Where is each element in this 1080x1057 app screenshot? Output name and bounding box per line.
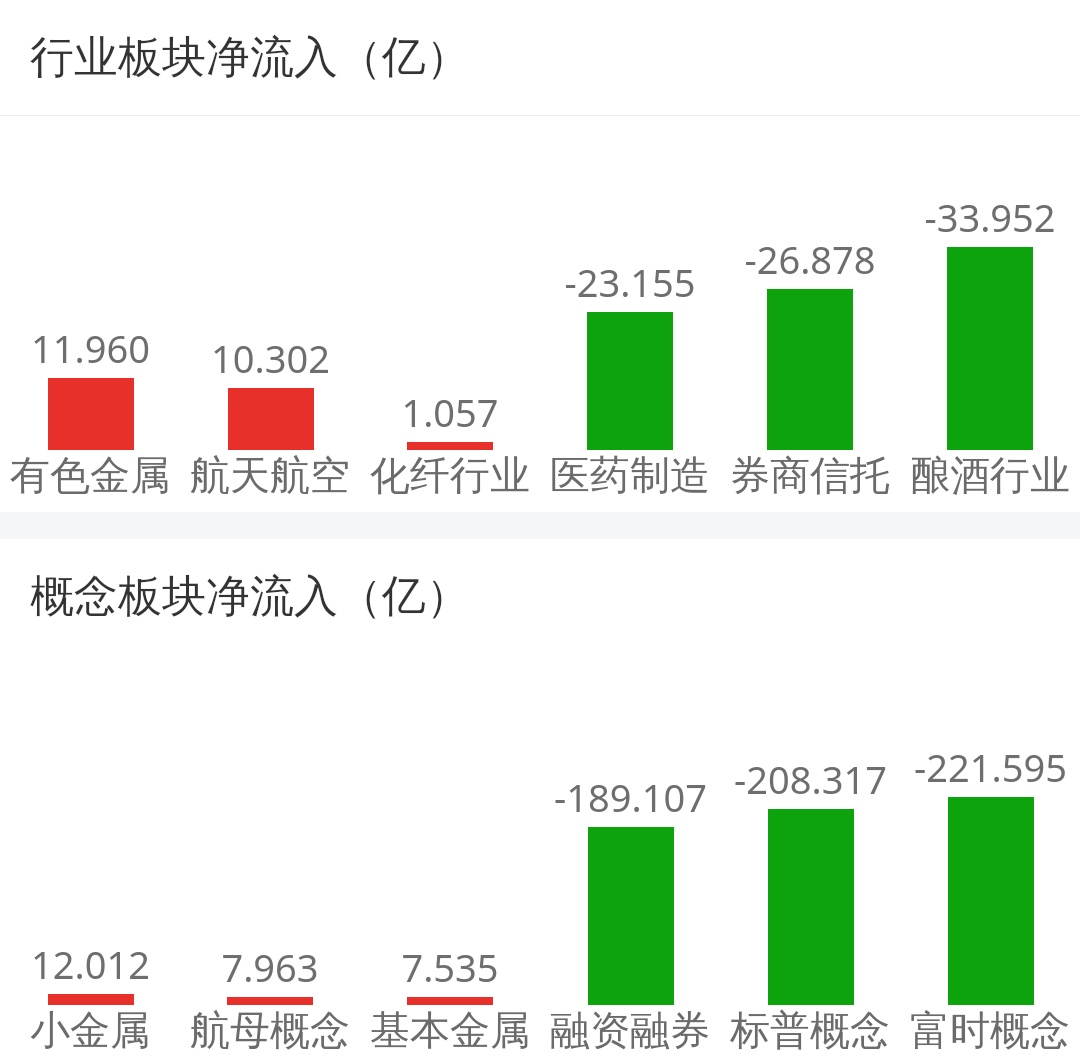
button[interactable]: 行业板块净流入（亿）: [0, 0, 1080, 115]
staticText: 融资融券: [550, 1005, 710, 1055]
button[interactable]: 10.302: [180, 116, 360, 512]
button[interactable]: -189.107: [540, 654, 720, 1057]
staticText: -208.317: [734, 753, 887, 805]
staticText: 富时概念: [910, 1005, 1070, 1055]
button[interactable]: -208.317: [720, 654, 900, 1057]
staticText: -33.952: [924, 191, 1056, 243]
staticText: 1.057: [401, 386, 499, 438]
staticText: 券商信托: [730, 450, 890, 500]
staticText: 医药制造: [550, 450, 710, 500]
staticText: 酿酒行业: [910, 450, 1070, 500]
staticText: -23.155: [564, 256, 696, 308]
button[interactable]: 概念板块净流入（亿）: [0, 539, 1080, 654]
button[interactable]: 1.057: [360, 116, 540, 512]
button[interactable]: 12.012: [0, 654, 180, 1057]
staticText: -189.107: [554, 771, 707, 823]
staticText: 7.963: [221, 941, 319, 993]
staticText: -26.878: [744, 233, 876, 285]
staticText: 概念板块净流入（亿）: [30, 569, 470, 624]
staticText: 10.302: [211, 332, 330, 384]
staticText: 12.012: [31, 938, 150, 990]
staticText: 行业板块净流入（亿）: [30, 30, 470, 85]
staticText: 航天航空: [190, 450, 350, 500]
button[interactable]: 7.535: [360, 654, 540, 1057]
staticText: 标普概念: [730, 1005, 890, 1055]
staticText: 11.960: [31, 322, 150, 374]
button[interactable]: -33.952: [900, 116, 1080, 512]
button[interactable]: 7.963: [180, 654, 360, 1057]
button[interactable]: -26.878: [720, 116, 900, 512]
staticText: 基本金属: [370, 1005, 530, 1055]
staticText: 航母概念: [190, 1005, 350, 1055]
staticText: -221.595: [914, 741, 1067, 793]
button[interactable]: -23.155: [540, 116, 720, 512]
staticText: 有色金属: [10, 450, 170, 500]
staticText: 小金属: [30, 1005, 150, 1055]
button[interactable]: 11.960: [0, 116, 180, 512]
staticText: 7.535: [401, 941, 499, 993]
staticText: 化纤行业: [370, 450, 530, 500]
button[interactable]: -221.595: [900, 654, 1080, 1057]
